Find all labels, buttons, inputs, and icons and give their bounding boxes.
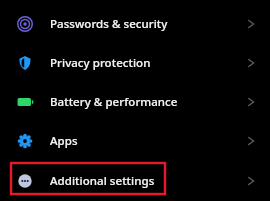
staticText: Additional settings [50,173,242,189]
button[interactable]: Additional settings [0,161,270,200]
button[interactable]: Privacy protection [0,43,270,82]
button[interactable]: Apps [0,121,270,161]
button[interactable]: Battery & performance [0,82,270,121]
button[interactable]: Passwords & security [0,4,270,43]
staticText: Passwords & security [50,16,242,32]
staticText: Battery & performance [50,94,242,110]
staticText: Apps [50,133,242,149]
staticText: Privacy protection [50,55,242,71]
